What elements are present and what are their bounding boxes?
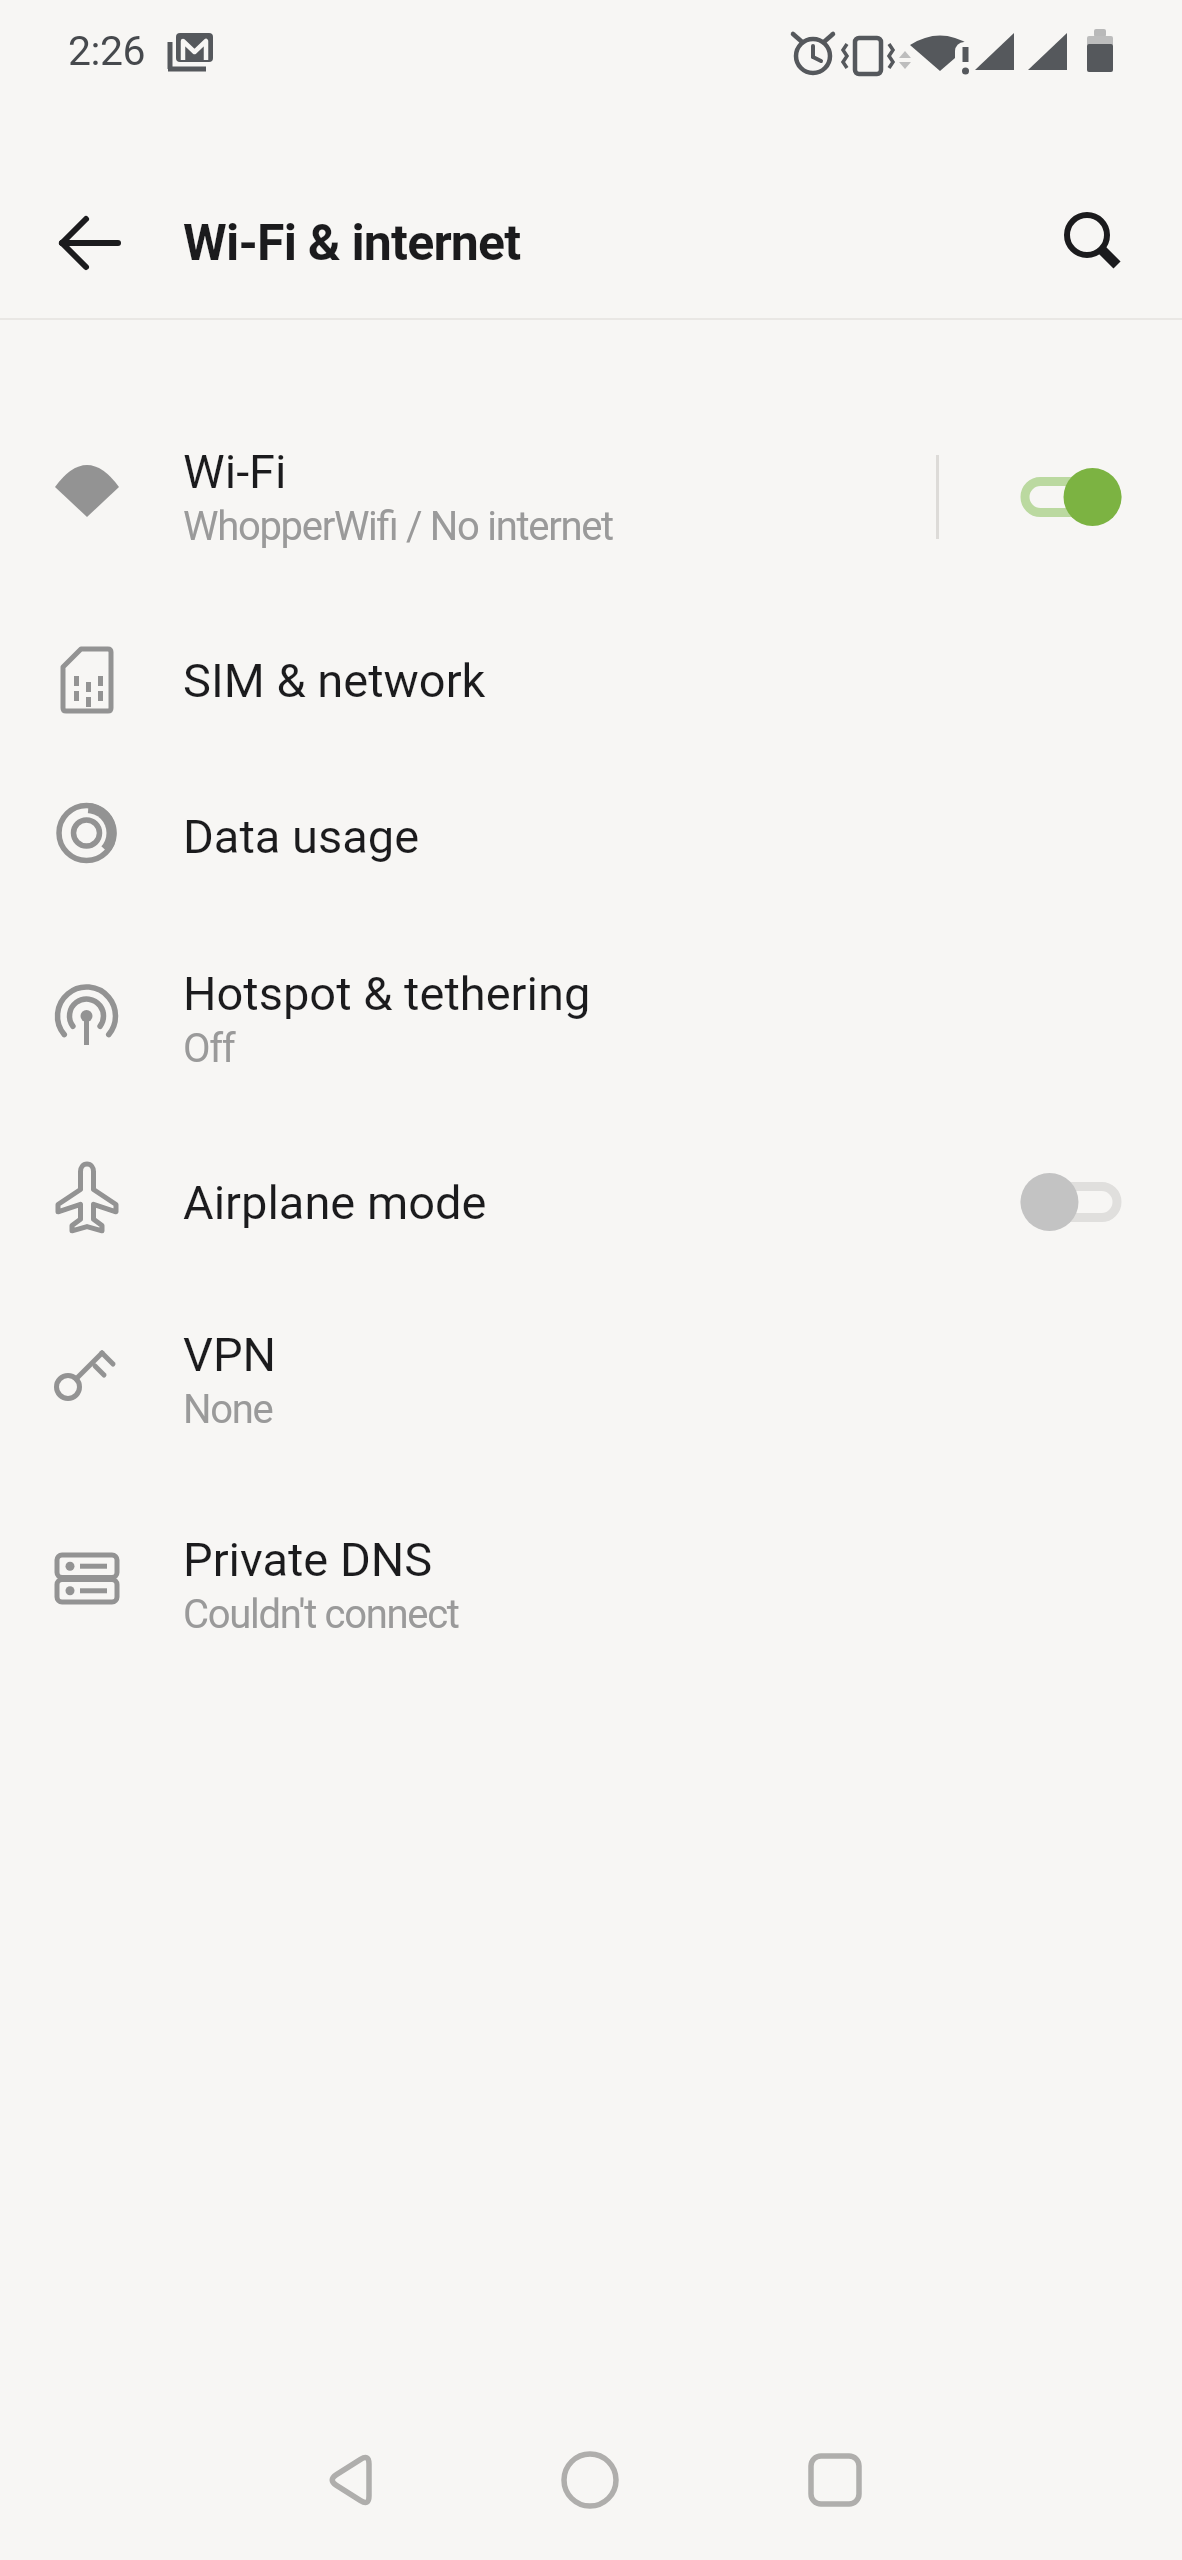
button[interactable] [46,199,134,287]
button[interactable]: Hotspot & tethering [0,914,1182,1124]
staticText: Hotspot & tethering [183,966,591,1021]
button[interactable] [540,2430,640,2530]
button[interactable] [300,2430,400,2530]
staticText: SIM & network [183,653,486,708]
button[interactable]: Private DNS [0,1480,1182,1690]
staticText: Airplane mode [183,1175,487,1230]
staticText: Private DNS [183,1532,433,1587]
button[interactable]: SIM & network [0,602,1182,758]
staticText: Off [183,1025,235,1072]
staticText: WhopperWifi / No internet [183,503,613,550]
staticText: VPN [183,1327,277,1382]
staticText: Couldn't connect [183,1591,459,1638]
staticText: 2:26 [68,27,146,75]
staticText: None [183,1386,273,1433]
button[interactable] [1019,467,1123,527]
button[interactable] [785,2430,885,2530]
button[interactable] [1019,1172,1123,1232]
staticText: Wi-Fi [183,444,287,499]
button[interactable]: Data usage [0,758,1182,914]
button[interactable] [1048,199,1136,287]
staticText: Data usage [183,809,420,864]
button[interactable]: Wi-Fi [0,392,1182,602]
button[interactable]: Airplane mode [0,1124,1182,1280]
staticText: Wi-Fi & internet [183,214,521,273]
button[interactable]: VPN [0,1280,1182,1480]
